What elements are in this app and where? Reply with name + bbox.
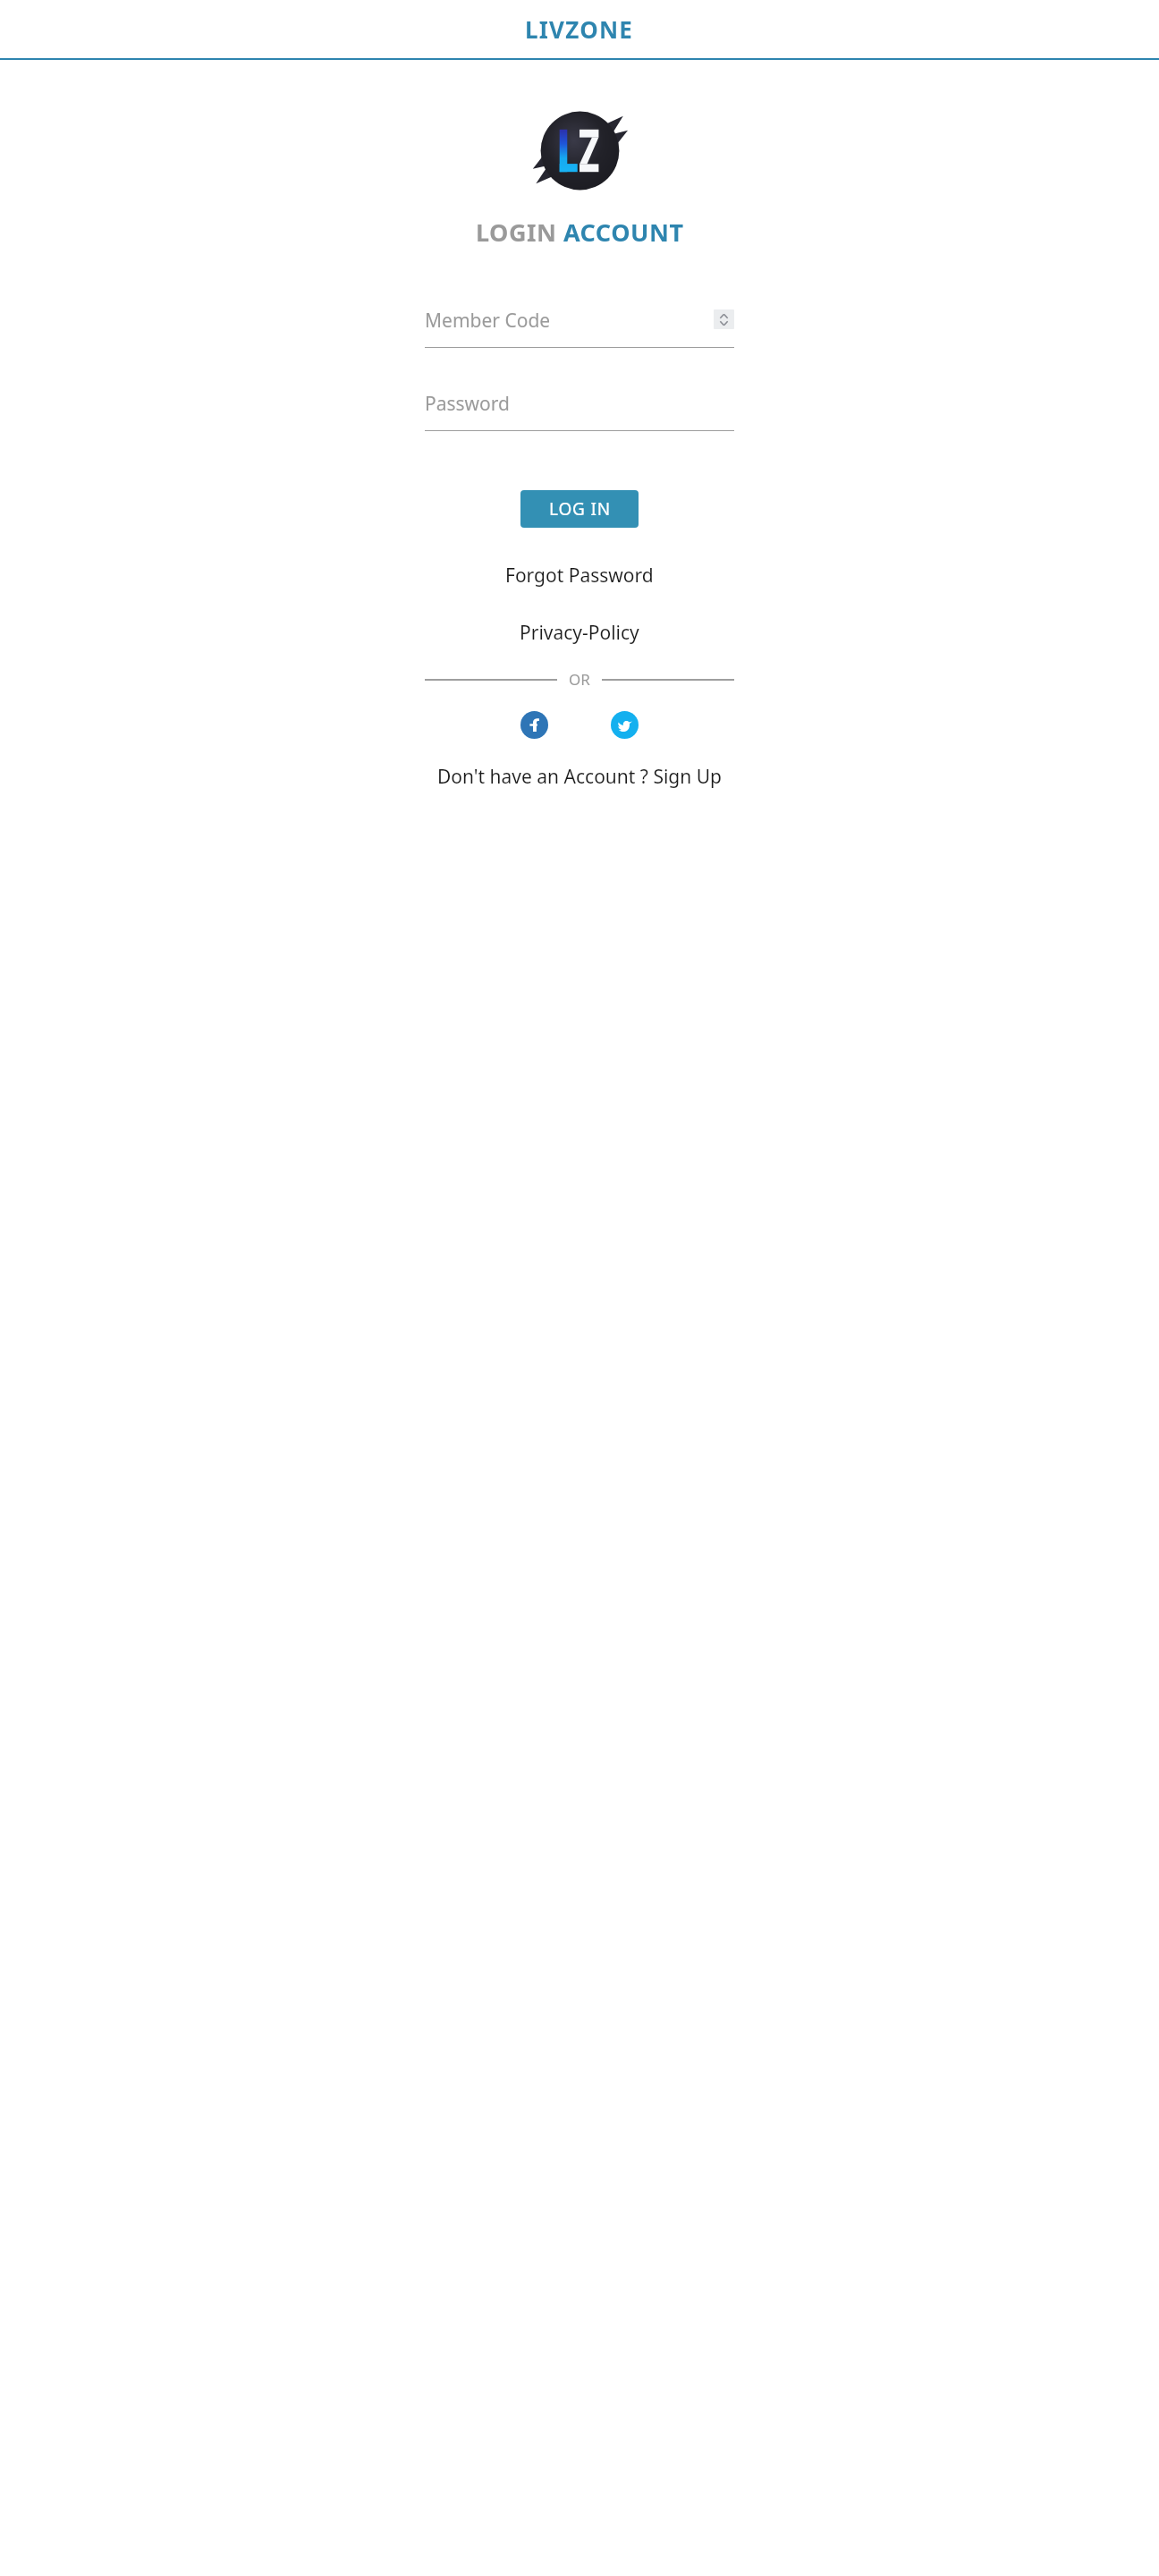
staticText: LOG IN — [549, 497, 611, 521]
button[interactable]: Sign in with Twitter — [611, 711, 639, 739]
button[interactable]: Sign in with Facebook — [520, 711, 548, 739]
button[interactable]: Increment or decrement member code — [714, 309, 734, 329]
staticText: LOGIN ACCOUNT — [476, 216, 684, 249]
button[interactable]: Forgot Password — [496, 559, 663, 592]
button[interactable]: Member Code — [425, 297, 734, 347]
staticText: Forgot Password — [505, 563, 654, 589]
button[interactable]: Password — [425, 380, 734, 430]
staticText: OR — [569, 669, 590, 690]
button[interactable]: Privacy-Policy — [511, 616, 648, 649]
staticText: LIVZONE — [525, 13, 634, 45]
staticText: Privacy-Policy — [520, 620, 639, 646]
staticText: Password — [425, 391, 510, 417]
staticText: Don't have an Account ? Sign Up — [437, 764, 722, 790]
staticText: Member Code — [425, 308, 551, 334]
button[interactable]: LOG IN — [520, 490, 639, 528]
button[interactable]: Don't have an Account ? Sign Up — [428, 760, 731, 793]
